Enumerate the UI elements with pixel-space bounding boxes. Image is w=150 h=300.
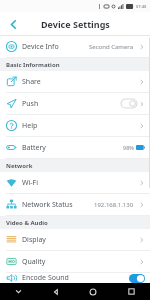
staticText: 192.168.1.130: [94, 201, 134, 209]
staticText: Wi-Fi: [22, 178, 39, 188]
button[interactable]: Push: [0, 93, 150, 115]
button[interactable]: Network Status: [0, 194, 150, 216]
button[interactable]: Encode Sound: [0, 273, 150, 283]
button[interactable]: Wi-Fi: [0, 172, 150, 194]
button[interactable]: Recents: [112, 283, 150, 300]
staticText: Push: [22, 99, 39, 109]
button[interactable]: Back: [2, 13, 24, 35]
button[interactable]: Quality: [0, 251, 150, 273]
staticText: Device Settings: [41, 18, 110, 30]
staticText: Second Camera: [89, 43, 134, 51]
button[interactable]: Hide keyboard: [0, 283, 37, 300]
staticText: Quality: [22, 257, 46, 267]
staticText: Share: [22, 77, 41, 87]
button[interactable]: Back: [37, 283, 74, 300]
button[interactable]: Device Info: [0, 36, 150, 58]
button[interactable]: Push toggle: [121, 99, 137, 108]
staticText: Video & Audio: [6, 219, 48, 227]
button[interactable]: Encode sound toggle: [129, 274, 145, 283]
staticText: Device Info: [22, 42, 59, 52]
staticText: Network Status: [22, 200, 73, 210]
staticText: Encode Sound: [22, 273, 69, 283]
button[interactable]: Share: [0, 71, 150, 93]
button[interactable]: Battery: [0, 137, 150, 159]
staticText: Network: [6, 162, 33, 170]
staticText: Battery: [22, 143, 46, 153]
staticText: 98%: [123, 144, 134, 151]
button[interactable]: Help: [0, 115, 150, 137]
staticText: Basic Information: [6, 61, 60, 69]
staticText: 07:40: [136, 4, 147, 9]
button[interactable]: Display: [0, 229, 150, 251]
staticText: Help: [22, 121, 38, 131]
button[interactable]: Home: [74, 283, 112, 300]
staticText: Display: [22, 235, 46, 245]
